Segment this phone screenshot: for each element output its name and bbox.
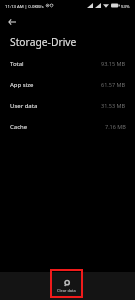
button[interactable]: Total bbox=[0, 53, 135, 74]
staticText: 7.16 MB bbox=[105, 123, 126, 130]
staticText: 53% bbox=[121, 3, 130, 9]
staticText: User data bbox=[10, 102, 38, 110]
button[interactable]: Clear data bbox=[50, 269, 83, 298]
staticText: Cache bbox=[10, 123, 28, 131]
staticText: 31.53 MB bbox=[101, 102, 126, 109]
button[interactable]: User data bbox=[0, 95, 135, 116]
staticText: Total bbox=[10, 60, 24, 68]
staticText: Clear data bbox=[57, 288, 76, 293]
button[interactable]: Back bbox=[4, 14, 20, 30]
button[interactable]: App size bbox=[0, 74, 135, 95]
staticText: 11:13 AM | 0.0KB/s bbox=[5, 3, 44, 9]
staticText: 61.57 MB bbox=[101, 81, 126, 88]
staticText: App size bbox=[10, 81, 34, 89]
staticText: Storage-Drive bbox=[10, 35, 77, 49]
button[interactable]: Cache bbox=[0, 116, 135, 137]
staticText: 93.15 MB bbox=[101, 60, 126, 67]
